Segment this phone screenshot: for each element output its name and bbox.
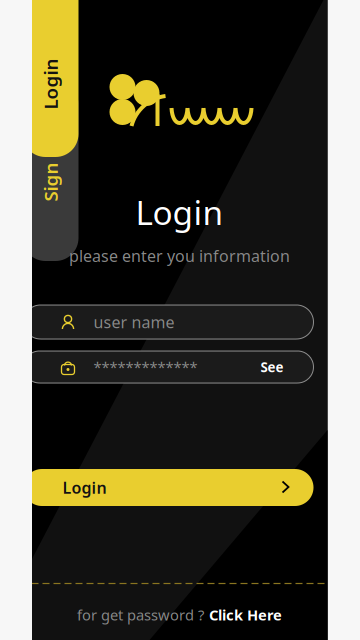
staticText: for get password ?: [77, 605, 204, 624]
button[interactable]: user name: [31, 305, 328, 339]
staticText: Login: [62, 477, 106, 498]
staticText: See: [260, 358, 283, 376]
staticText: user name: [93, 311, 174, 333]
button[interactable]: See: [254, 358, 289, 376]
staticText: Sign in: [20, 159, 81, 183]
button[interactable]: *************: [31, 351, 328, 383]
staticText: Login: [135, 190, 223, 234]
staticText: Login: [25, 72, 76, 96]
staticText: *************: [93, 357, 197, 377]
staticText: Click Here: [209, 605, 282, 624]
button[interactable]: Sign in: [22, 81, 78, 261]
button[interactable]: Login: [31, 469, 328, 506]
button[interactable]: Click Here: [209, 605, 282, 624]
button[interactable]: Login: [22, 0, 78, 157]
staticText: please enter you information: [69, 245, 290, 266]
